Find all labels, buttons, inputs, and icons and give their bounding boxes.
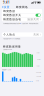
staticText: 个人热点 — [3, 33, 15, 36]
staticText: 蜂窝数据开关 — [3, 14, 21, 17]
button[interactable]: 蜂窝数据选项 — [2, 17, 42, 21]
staticText: 蜂窝数据选项 — [3, 18, 21, 21]
staticText: 3 GB — [36, 52, 39, 54]
staticText: 与其他设备共享 iPhone 互联网连接。 — [3, 38, 21, 40]
staticText: 蜂窝数据 — [3, 9, 15, 13]
button[interactable]: 蜂窝数据开关 — [2, 13, 42, 17]
button[interactable]: 设置 — [1, 5, 11, 9]
staticText: 设置 — [4, 5, 10, 9]
button[interactable]: 个人热点 — [2, 32, 42, 37]
staticText: 0 MB — [36, 80, 39, 81]
staticText: 200 MB — [36, 71, 41, 73]
staticText: 9:41 — [3, 1, 10, 4]
staticText: 0 GB — [36, 65, 39, 67]
staticText: 蜂窝数据用量 — [3, 45, 21, 48]
button[interactable]: 蜂窝数据 — [2, 9, 42, 13]
staticText: 系统服务 412 MB — [2, 69, 11, 71]
staticText: 漫游关闭 — [27, 18, 39, 21]
staticText: 蜂窝网络 — [16, 5, 28, 9]
staticText: 100 MB — [36, 76, 41, 77]
staticText: 关闭蜂窝数据以限制所有数据只使用 Wi‑Fi，包括电子邮件、网页浏览和推送通知。 — [3, 23, 39, 24]
staticText: 1.5 GB — [36, 59, 40, 60]
staticText: 关闭 — [33, 33, 39, 36]
staticText: 当前时段 2.89 GB — [3, 49, 12, 50]
